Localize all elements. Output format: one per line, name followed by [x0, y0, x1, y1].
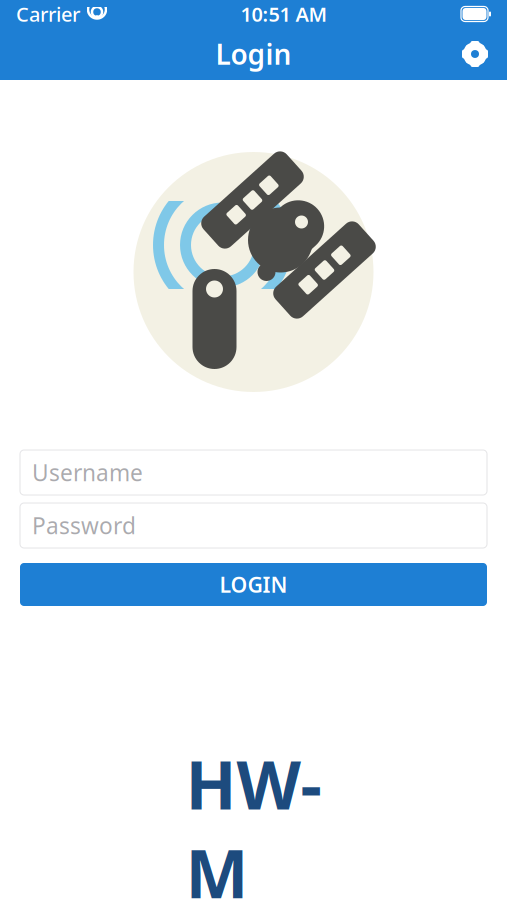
staticText: LOGIN — [219, 570, 287, 599]
staticText: 10:51 AM — [240, 1, 327, 27]
staticText: HWM — [185, 739, 321, 900]
staticText: Login — [215, 35, 291, 73]
staticText: Carrier — [16, 1, 80, 27]
staticText: Username — [32, 457, 143, 487]
staticText: Password — [32, 510, 136, 540]
button[interactable]: Password — [20, 503, 487, 548]
button[interactable]: Username — [20, 450, 487, 495]
button[interactable]: Settings — [453, 32, 497, 76]
button[interactable]: LOGIN — [20, 563, 487, 606]
